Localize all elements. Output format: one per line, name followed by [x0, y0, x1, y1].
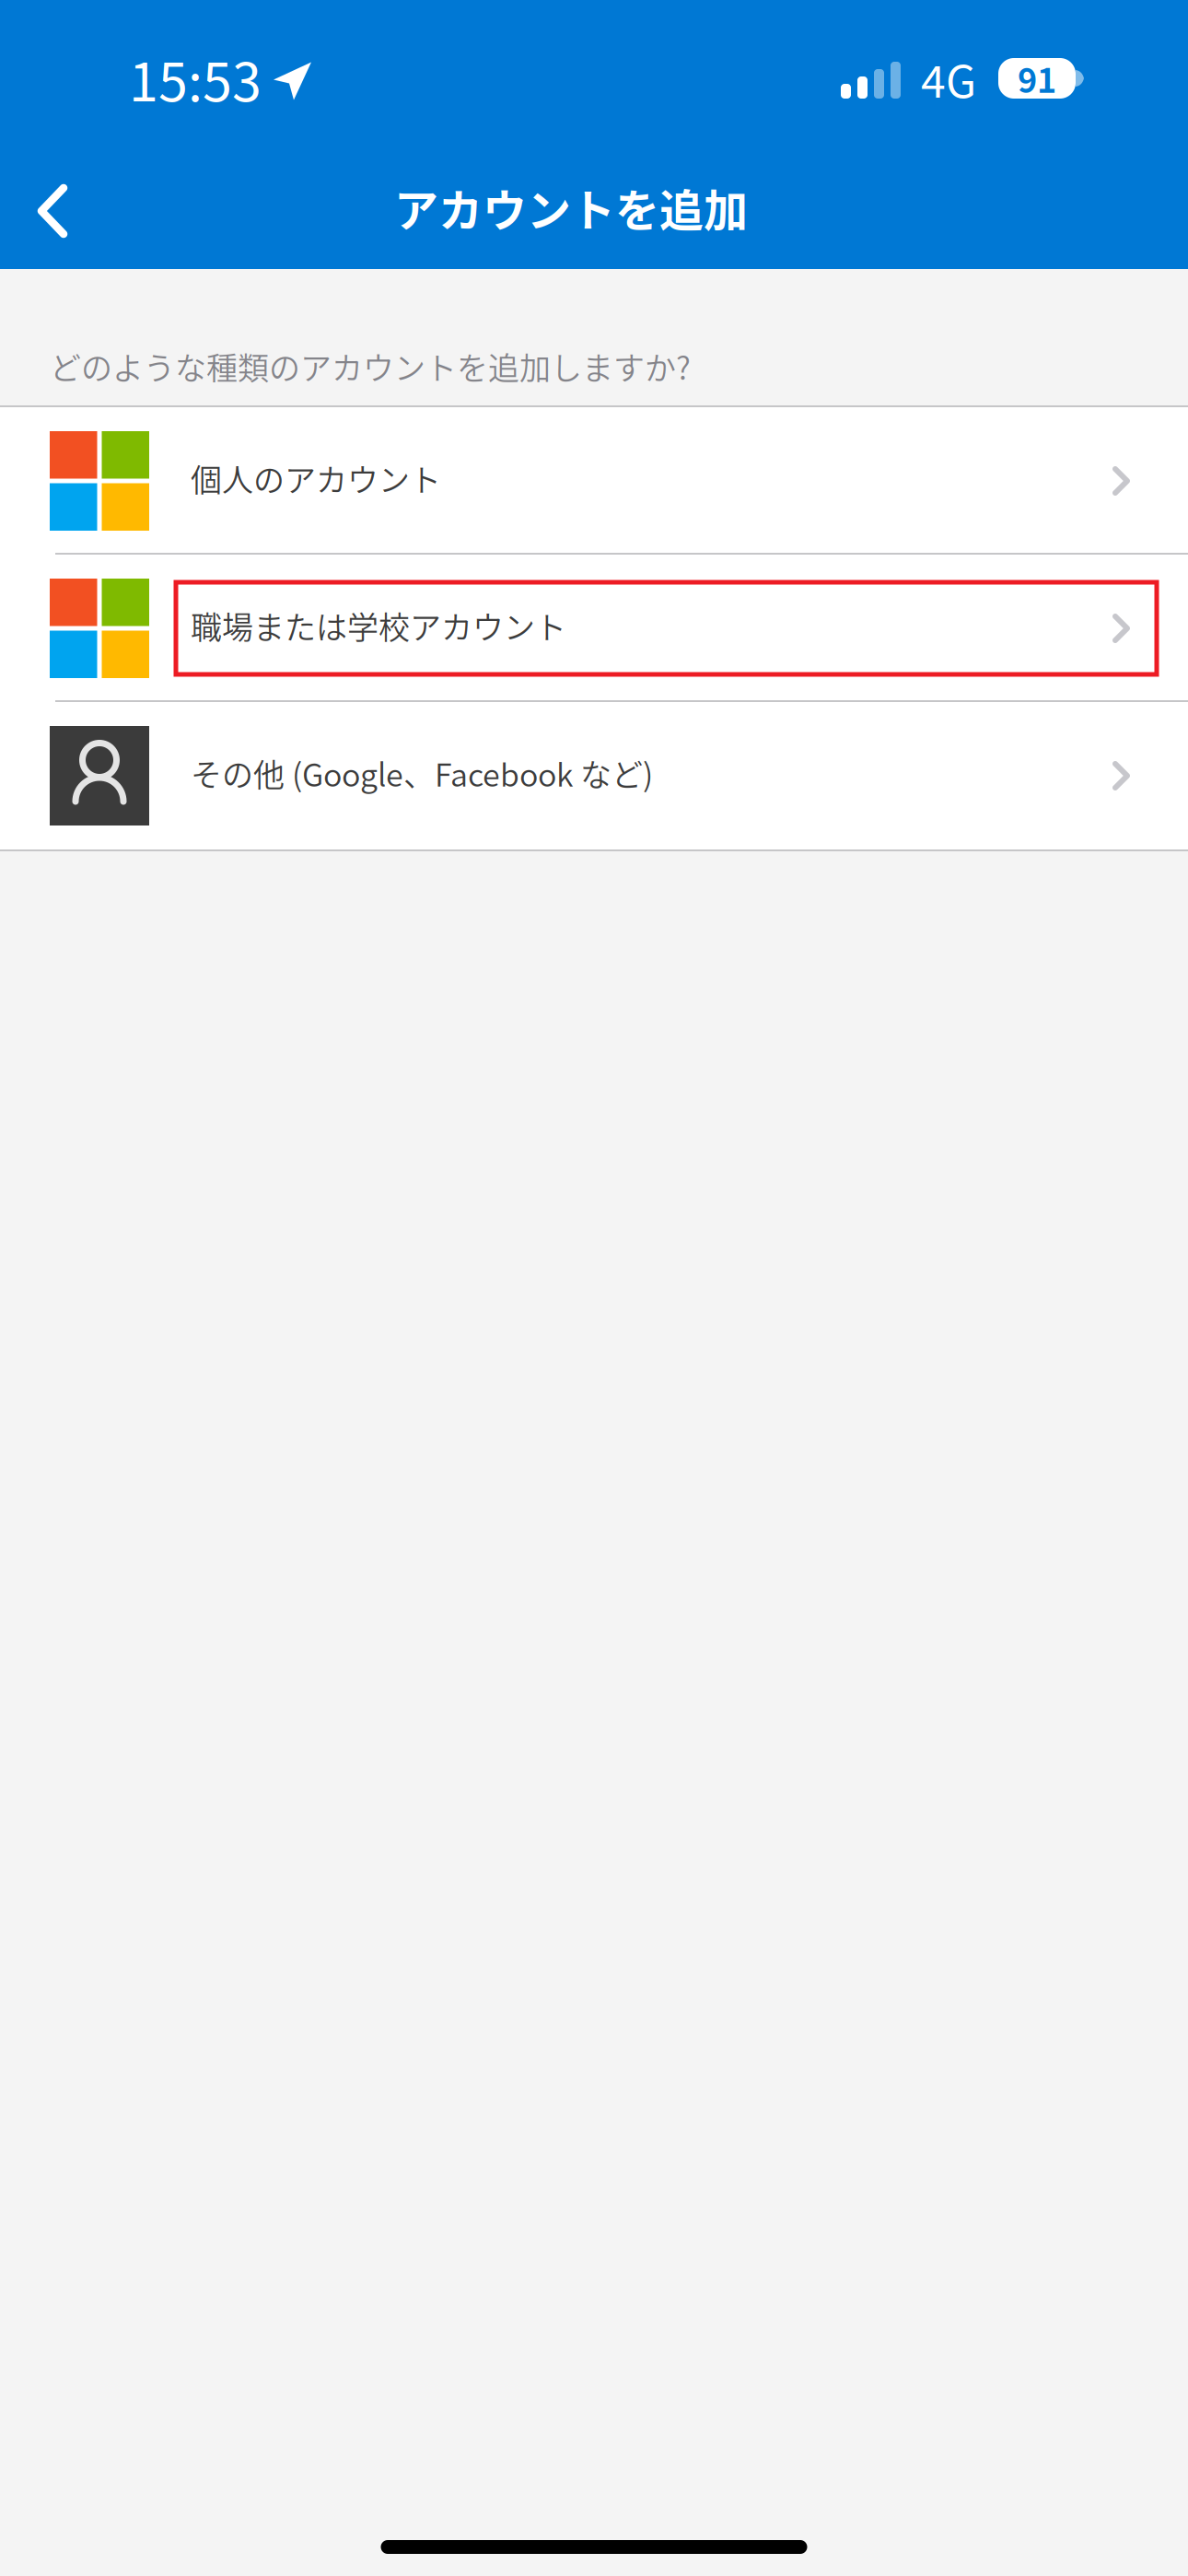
staticText: アカウントを追加: [394, 175, 748, 239]
button[interactable]: 戻る: [0, 157, 111, 269]
staticText: どのような種類のアカウントを追加しますか?: [50, 343, 691, 389]
staticText: 個人のアカウント: [191, 455, 441, 501]
staticText: 91: [1018, 54, 1056, 102]
staticText: 4G: [921, 46, 976, 110]
staticText: その他 (Google、Facebook など): [191, 750, 653, 796]
staticText: 職場または学校アカウント: [191, 603, 566, 648]
staticText: 15:53: [129, 40, 262, 117]
button[interactable]: 職場または学校アカウント: [0, 555, 1188, 702]
button[interactable]: その他 (Google、Facebook など): [0, 702, 1188, 849]
button[interactable]: 個人のアカウント: [0, 407, 1188, 555]
